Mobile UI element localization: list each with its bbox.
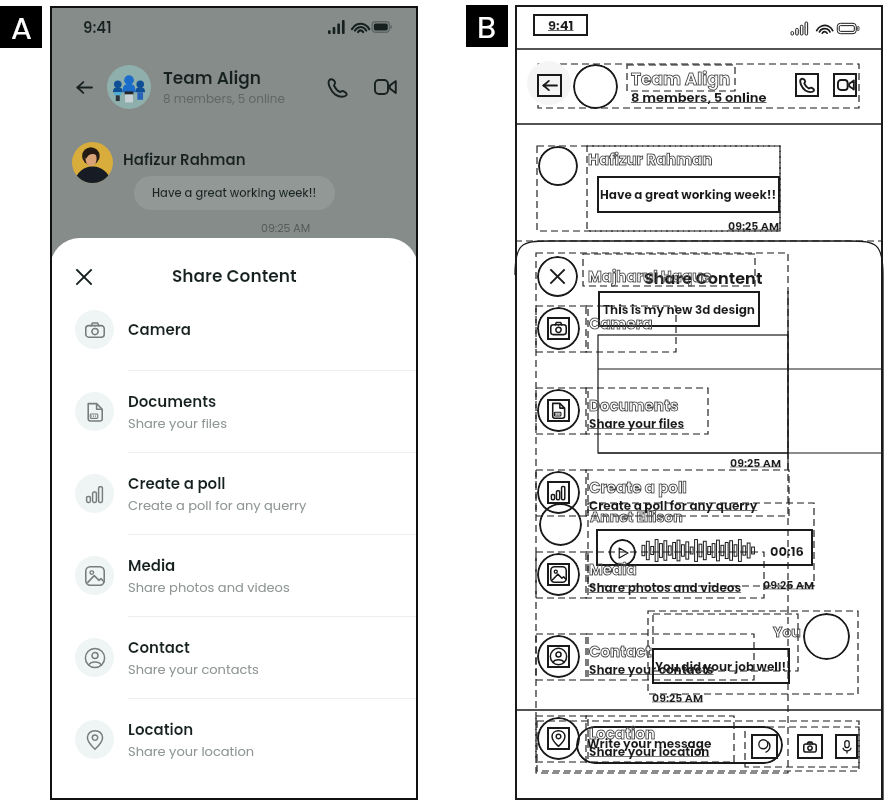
staticText: Write your message [587, 735, 712, 752]
staticText: Create a poll for any querry [128, 496, 307, 514]
staticText: 00:16 [770, 542, 804, 560]
staticText: Location [128, 719, 194, 740]
staticText: Share Content [644, 267, 763, 289]
staticText: Share your contacts [128, 660, 259, 678]
staticText: Camera [589, 313, 653, 334]
staticText: Share your location [128, 742, 255, 760]
staticText: Share photos and videos [589, 579, 742, 596]
staticText: 09:25 AM [730, 455, 782, 470]
button[interactable]: Contact [50, 617, 418, 698]
staticText: Hafizur Rahman [123, 149, 246, 170]
button[interactable]: Documents [50, 371, 418, 452]
staticText: Contact [128, 637, 190, 658]
staticText: You did your job well! [655, 658, 787, 675]
staticText: Media [128, 555, 176, 576]
staticText: Share photos and videos [128, 578, 290, 596]
button[interactable]: Back [71, 74, 97, 100]
button[interactable]: Close [67, 260, 101, 294]
staticText: 09:25 AM [728, 218, 780, 233]
staticText: Create a poll [589, 477, 687, 498]
staticText: Documents [589, 395, 679, 416]
staticText: Share your files [589, 415, 685, 432]
staticText: Media [589, 559, 637, 580]
staticText: Create a poll for any querry [589, 497, 758, 514]
staticText: 9:41 [548, 16, 574, 34]
staticText: Location [589, 723, 656, 744]
staticText: Majharul Haque [588, 266, 712, 287]
staticText: You [773, 622, 801, 642]
button[interactable]: Create a poll [50, 453, 418, 534]
staticText: Create a poll [128, 473, 226, 494]
staticText: Share your files [128, 414, 227, 432]
button[interactable]: Media [50, 535, 418, 616]
button[interactable]: Voice call [322, 72, 352, 102]
staticText: Have a great working week!! [600, 186, 777, 203]
staticText: Share Content [172, 264, 297, 288]
button[interactable]: Location [50, 699, 418, 780]
staticText: 8 members, 5 online [631, 88, 767, 106]
staticText: A [11, 6, 32, 48]
staticText: Share your location [589, 743, 710, 760]
staticText: This is my new 3d design [603, 301, 755, 318]
staticText: 09:25 AM [261, 220, 311, 235]
staticText: B [477, 5, 497, 47]
button[interactable]: Camera [50, 289, 418, 370]
staticText: Team Align [163, 66, 262, 90]
staticText: 09:25 AM [652, 690, 704, 705]
staticText: Annet Ellison [590, 507, 683, 527]
staticText: Hafizur Rahman [588, 149, 713, 170]
staticText: Team Align [631, 67, 731, 91]
staticText: 09:25 AM [763, 577, 815, 592]
staticText: Contact [589, 641, 652, 662]
staticText: Share your contacts [589, 661, 714, 678]
staticText: Camera [128, 319, 191, 340]
staticText: 9:41 [83, 17, 112, 38]
staticText: Documents [128, 391, 217, 412]
staticText: Have a great working week!! [152, 185, 317, 201]
button[interactable]: Video call [370, 72, 400, 102]
staticText: 8 members, 5 online [163, 90, 285, 107]
